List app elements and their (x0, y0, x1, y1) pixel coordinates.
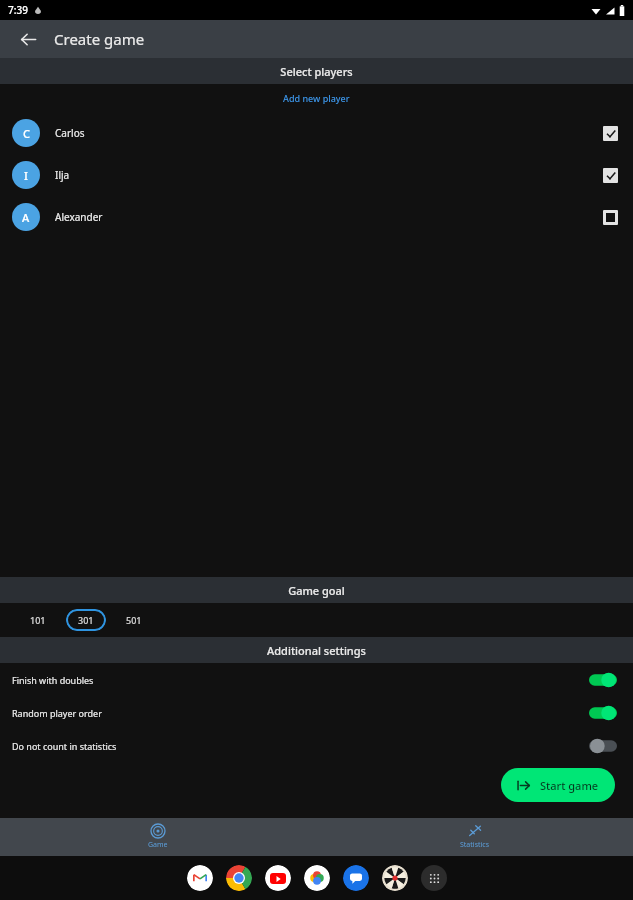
button[interactable]: Gmail (187, 865, 213, 891)
staticText: Alexander (55, 210, 103, 224)
staticText: A (22, 210, 30, 225)
staticText: I (24, 168, 28, 183)
staticText: Statistics (460, 840, 490, 850)
button[interactable]: YouTube (265, 865, 291, 891)
staticText: Ilja (55, 168, 70, 182)
staticText: 101 (30, 614, 46, 626)
staticText: Start game (540, 778, 599, 793)
button[interactable]: 101 (18, 609, 58, 631)
button[interactable]: Photos (304, 865, 330, 891)
button[interactable]: Start game (501, 768, 615, 802)
staticText: 301 (78, 614, 94, 626)
staticText: Game goal (288, 583, 345, 598)
button[interactable]: C (0, 112, 633, 154)
staticText: Game (148, 840, 168, 850)
staticText: C (23, 126, 30, 141)
button[interactable]: All apps (421, 865, 447, 891)
button[interactable]: Back (14, 25, 42, 53)
button[interactable]: Chrome (226, 865, 252, 891)
staticText: 7:39 (8, 3, 28, 17)
staticText: Additional settings (267, 643, 366, 658)
button[interactable]: I (0, 154, 633, 196)
button[interactable]: Darts (382, 865, 408, 891)
staticText: Do not count in statistics (12, 740, 117, 752)
button[interactable]: A (0, 196, 633, 238)
button[interactable]: Messages (343, 865, 369, 891)
button[interactable]: Statistics (316, 818, 633, 856)
staticText: Select players (280, 64, 353, 79)
button[interactable]: Add new player (0, 84, 633, 112)
button[interactable]: Do not count in statistics (0, 729, 633, 762)
button[interactable]: Finish with doubles (0, 663, 633, 696)
button[interactable]: 301 (66, 609, 106, 631)
staticText: Random player order (12, 707, 102, 719)
staticText: Create game (54, 29, 145, 49)
staticText: Add new player (283, 92, 350, 104)
staticText: Carlos (55, 126, 85, 140)
button[interactable]: 501 (114, 609, 154, 631)
button[interactable]: Random player order (0, 696, 633, 729)
staticText: 501 (126, 614, 142, 626)
button[interactable]: Game (0, 818, 316, 856)
staticText: Finish with doubles (12, 674, 94, 686)
